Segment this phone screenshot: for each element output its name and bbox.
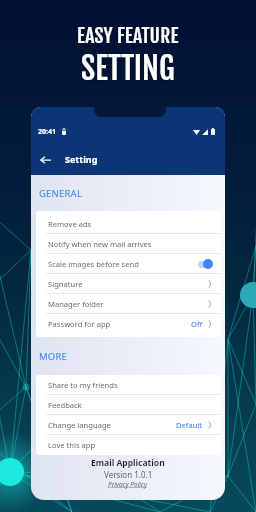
button[interactable]: Password for app	[36, 314, 221, 334]
staticText: Version 1.0.1	[104, 469, 153, 480]
staticText: Scale images before send	[48, 259, 139, 269]
staticText: Signature	[48, 279, 83, 289]
staticText: GENERAL	[39, 187, 83, 200]
staticText: Setting	[65, 153, 98, 165]
button[interactable]: Notify when new mail arrives	[36, 234, 221, 254]
button[interactable]: Love this app	[36, 435, 221, 455]
button[interactable]: Back	[36, 150, 55, 169]
staticText: Share to my friends	[48, 380, 118, 390]
staticText: Notify when new mail arrives	[48, 239, 152, 249]
staticText: Feedback	[48, 400, 82, 410]
staticText: Default	[176, 420, 203, 430]
button[interactable]: Remove ads	[36, 214, 221, 234]
staticText: Email Application	[91, 457, 165, 469]
staticText: MORE	[39, 350, 68, 363]
staticText: Change language	[48, 420, 111, 430]
staticText: EASY FEATURE	[77, 23, 179, 48]
button[interactable]: Share to my friends	[36, 375, 221, 395]
button[interactable]: Scale images before send toggle	[198, 259, 213, 269]
staticText: Love this app	[48, 440, 96, 450]
staticText: SETTING	[81, 49, 175, 88]
button[interactable]: Privacy Policy	[108, 480, 148, 489]
staticText: Remove ads	[48, 219, 92, 229]
button[interactable]: Manager folder	[36, 294, 221, 314]
staticText: Password for app	[48, 319, 111, 329]
button[interactable]: Feedback	[36, 395, 221, 415]
staticText: Off	[191, 319, 203, 329]
button[interactable]: Signature	[36, 274, 221, 294]
button[interactable]: Change language	[36, 415, 221, 435]
button[interactable]: Scale images before send	[36, 254, 221, 274]
staticText: 20:41	[38, 127, 56, 137]
staticText: Manager folder	[48, 299, 104, 309]
